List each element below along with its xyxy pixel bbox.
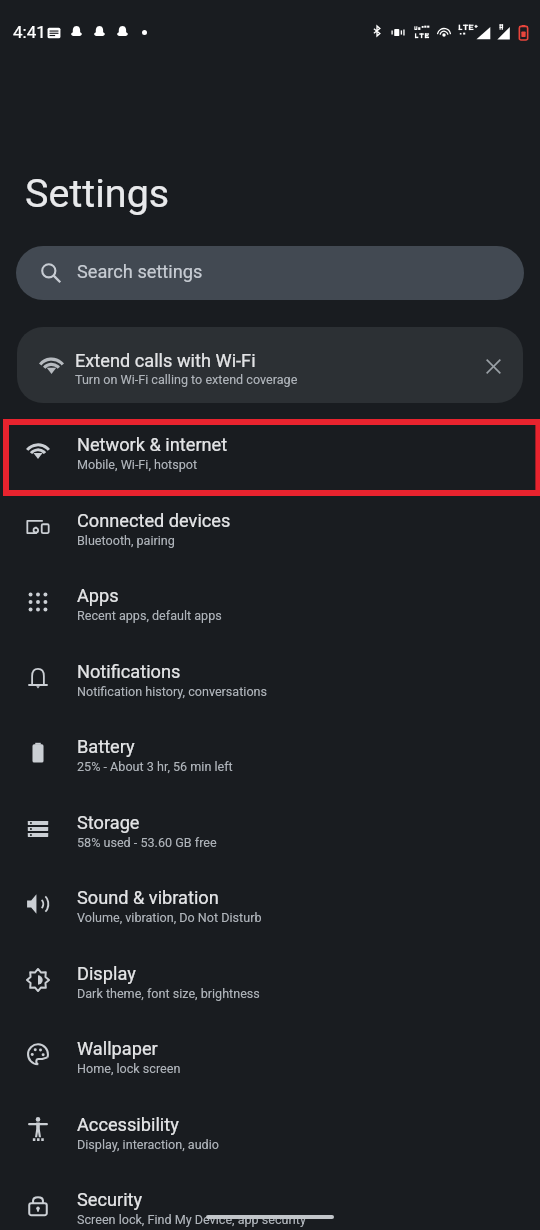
staticText: Wallpaper xyxy=(77,1038,158,1059)
staticText: Sound & vibration xyxy=(77,887,219,908)
staticText: Apps xyxy=(77,585,119,606)
button[interactable]: Storage xyxy=(0,796,540,872)
button[interactable]: Wallpaper xyxy=(0,1022,540,1098)
staticText: Search settings xyxy=(77,261,203,282)
button[interactable]: Extend calls with Wi-Fi xyxy=(17,327,523,403)
staticText: Mobile, Wi-Fi, hotspot xyxy=(77,457,198,472)
staticText: Extend calls with Wi-Fi xyxy=(75,350,256,371)
staticText: Display, interaction, audio xyxy=(77,1137,219,1152)
staticText: 4:41 xyxy=(13,22,46,42)
staticText: Notification history, conversations xyxy=(77,684,268,699)
button[interactable]: Search settings xyxy=(16,246,524,300)
button[interactable]: Network & internet xyxy=(0,418,540,494)
staticText: Turn on Wi-Fi calling to extend coverage xyxy=(75,372,298,387)
button[interactable]: Apps xyxy=(0,569,540,645)
staticText: Battery xyxy=(77,736,135,757)
staticText: Bluetooth, pairing xyxy=(77,533,175,548)
staticText: 58% used - 53.60 GB free xyxy=(77,835,217,850)
staticText: Connected devices xyxy=(77,510,231,531)
button[interactable]: Display xyxy=(0,947,540,1023)
staticText: Security xyxy=(77,1189,143,1210)
button[interactable]: Sound & vibration xyxy=(0,871,540,947)
staticText: Volume, vibration, Do Not Disturb xyxy=(77,910,262,925)
button[interactable]: Accessibility xyxy=(0,1098,540,1174)
button[interactable]: Dismiss xyxy=(469,342,517,390)
staticText: Settings xyxy=(25,170,170,216)
staticText: Notifications xyxy=(77,661,181,682)
staticText: Home, lock screen xyxy=(77,1061,181,1076)
staticText: Screen lock, Find My Device, app securit… xyxy=(77,1212,306,1227)
button[interactable]: Notifications xyxy=(0,645,540,721)
staticText: Accessibility xyxy=(77,1114,179,1135)
button[interactable]: Security xyxy=(0,1173,540,1230)
staticText: Display xyxy=(77,963,136,984)
staticText: Dark theme, font size, brightness xyxy=(77,986,260,1001)
staticText: 25% - About 3 hr, 56 min left xyxy=(77,759,233,774)
staticText: Recent apps, default apps xyxy=(77,608,222,623)
staticText: Storage xyxy=(77,812,140,833)
staticText: Network & internet xyxy=(77,434,228,455)
button[interactable]: Battery xyxy=(0,720,540,796)
button[interactable]: Connected devices xyxy=(0,494,540,570)
